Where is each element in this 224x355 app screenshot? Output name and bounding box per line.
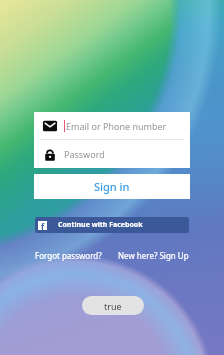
staticText: Forgot password? bbox=[35, 250, 102, 261]
staticText: Continue with Facebook bbox=[58, 220, 143, 230]
button[interactable]: Forgot password? bbox=[35, 250, 102, 261]
staticText: true bbox=[104, 300, 122, 312]
staticText: New here? Sign Up bbox=[118, 250, 189, 261]
staticText: Password bbox=[64, 148, 105, 160]
staticText: Sign in bbox=[94, 179, 130, 194]
staticText: f bbox=[41, 221, 45, 230]
button[interactable]: Password icon bbox=[34, 140, 190, 167]
button[interactable]: Sign in bbox=[34, 174, 190, 199]
button[interactable]: f bbox=[35, 217, 189, 233]
other: Email icon bbox=[42, 118, 58, 134]
other: Password icon bbox=[42, 146, 58, 162]
button[interactable]: true bbox=[82, 296, 144, 315]
button[interactable]: Email icon bbox=[34, 112, 190, 139]
button[interactable]: New here? Sign Up bbox=[118, 250, 189, 261]
staticText: Email or Phone number bbox=[66, 120, 167, 132]
